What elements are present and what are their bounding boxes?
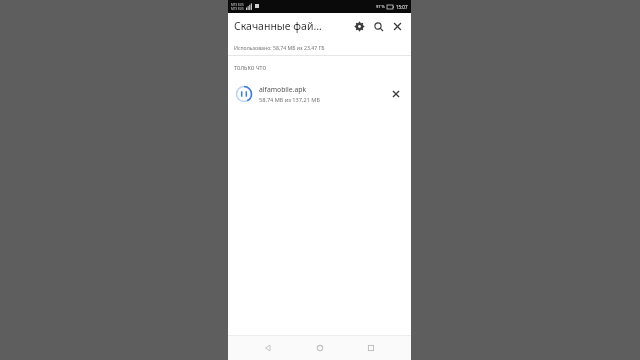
staticText: 15:07 (396, 4, 408, 10)
button[interactable]: Settings (350, 17, 369, 36)
staticText: 58,74 МБ из 137,21 МБ (259, 96, 320, 104)
staticText: только что (234, 63, 267, 71)
staticText: 97 % (376, 4, 385, 9)
staticText: alfamobile.apk (259, 85, 307, 94)
button[interactable]: alfamobile.apk (228, 78, 411, 110)
staticText: Использовано: 58,74 МБ из 23,47 ГБ (234, 44, 325, 51)
button[interactable]: Back (257, 337, 279, 359)
staticText: MTS RUS (231, 7, 244, 11)
staticText: Скачанные фай… (234, 19, 322, 33)
button[interactable]: Cancel download (387, 85, 405, 103)
staticText: MTS RUS (231, 3, 244, 7)
button[interactable]: Recents (360, 337, 382, 359)
button[interactable]: Home (309, 337, 331, 359)
button[interactable]: Search (369, 17, 388, 36)
button[interactable]: Close (388, 17, 407, 36)
